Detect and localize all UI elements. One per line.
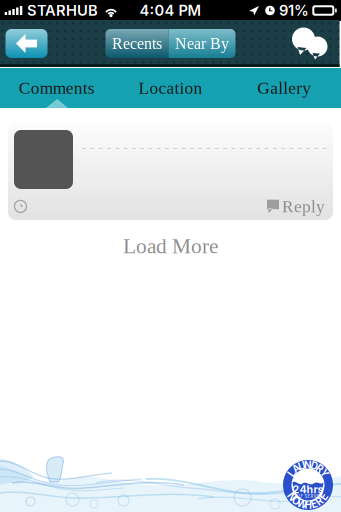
- staticText: Near By: [175, 35, 229, 52]
- staticText: W: [297, 498, 307, 510]
- staticText: Reply: [282, 197, 325, 216]
- staticText: Comments: [19, 78, 95, 98]
- button[interactable]: Comments: [0, 68, 114, 108]
- staticText: Location: [138, 78, 202, 98]
- button[interactable]: Gallery: [227, 68, 341, 108]
- staticText: A: [293, 463, 300, 475]
- button[interactable]: Location: [114, 68, 227, 108]
- staticText: Recents: [112, 35, 162, 52]
- staticText: SELF SERVICE: [292, 494, 323, 499]
- staticText: 24hrs: [292, 483, 323, 496]
- button[interactable]: Back: [5, 29, 47, 58]
- staticText: 91%: [279, 2, 309, 19]
- button[interactable]: Reply: [8, 123, 333, 220]
- staticText: 4:04 PM: [139, 2, 201, 19]
- button[interactable]: Load More: [0, 220, 341, 272]
- staticText: E: [311, 498, 317, 510]
- button[interactable]: Messages: [289, 28, 329, 60]
- staticText: STARHUB: [27, 2, 98, 19]
- staticText: Y: [321, 467, 328, 479]
- staticText: E: [321, 491, 327, 503]
- staticText: D: [311, 460, 318, 472]
- staticText: Gallery: [257, 78, 311, 98]
- button[interactable]: Recents: [105, 29, 168, 58]
- button[interactable]: Near By: [168, 29, 235, 58]
- staticText: Load More: [123, 234, 218, 258]
- staticText: H: [304, 499, 311, 511]
- staticText: L: [289, 467, 295, 479]
- staticText: N: [288, 491, 296, 503]
- staticText: R: [316, 463, 323, 475]
- staticText: O: [292, 495, 300, 507]
- staticText: R: [316, 495, 323, 507]
- staticText: N: [304, 459, 312, 471]
- staticText: U: [298, 460, 305, 472]
